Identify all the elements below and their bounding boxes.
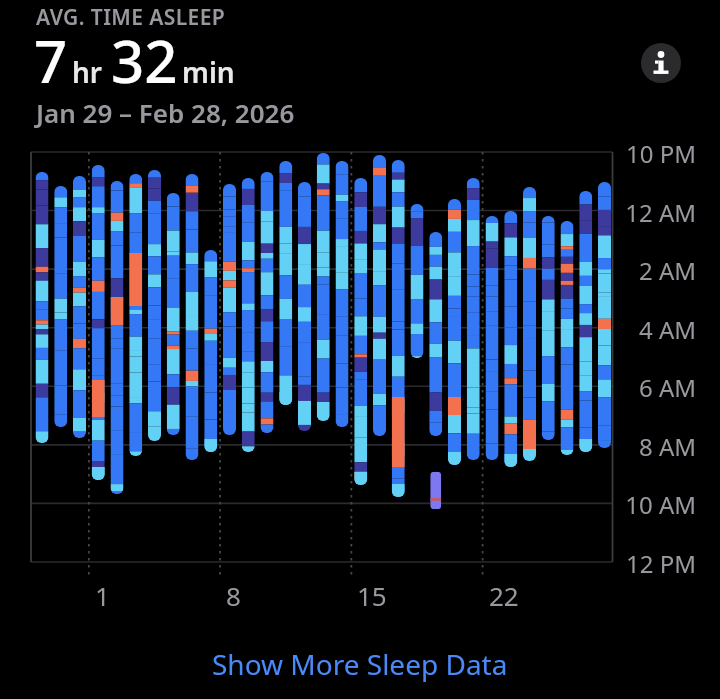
staticText: 10 PM <box>618 137 696 170</box>
staticText: 10 AM <box>618 488 696 521</box>
staticText: 12 PM <box>618 547 696 580</box>
staticText: Jan 29 – Feb 28, 2026 <box>36 95 295 130</box>
staticText: 22 <box>489 578 519 613</box>
staticText: 1 <box>95 578 110 613</box>
button[interactable] <box>641 43 681 83</box>
staticText: hr <box>72 53 103 91</box>
staticText: 8 AM <box>618 430 696 463</box>
staticText: AVG. TIME ASLEEP <box>36 3 226 32</box>
staticText: 2 AM <box>618 254 696 287</box>
button[interactable]: Show More Sleep Data <box>212 645 508 683</box>
staticText: 8 <box>226 578 241 613</box>
staticText: 32 <box>111 21 178 100</box>
staticText: 15 <box>357 578 387 613</box>
staticText: 4 AM <box>618 313 696 346</box>
staticText: 7 <box>34 21 68 100</box>
staticText: 12 AM <box>618 196 696 229</box>
staticText: min <box>182 53 235 91</box>
staticText: 6 AM <box>618 371 696 404</box>
